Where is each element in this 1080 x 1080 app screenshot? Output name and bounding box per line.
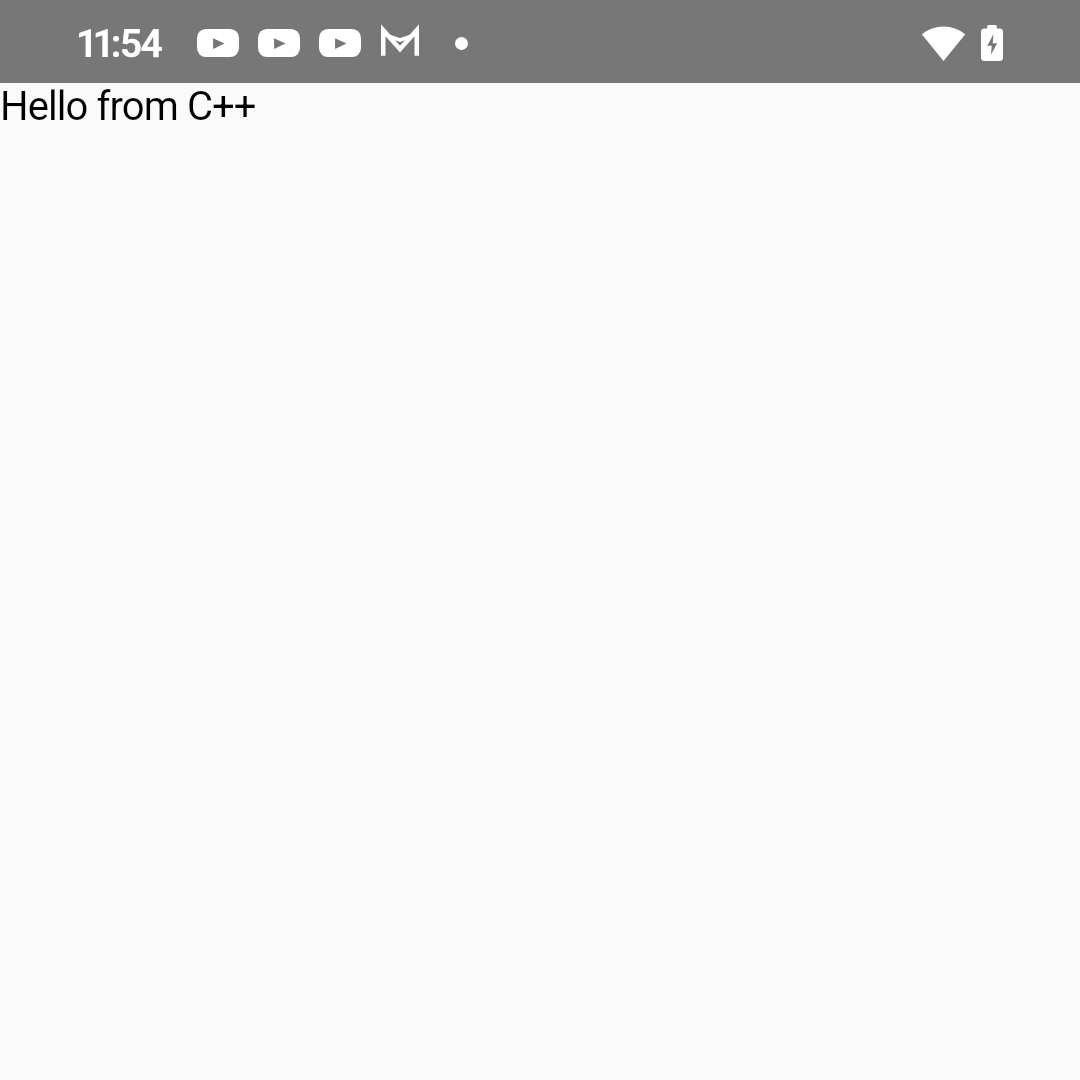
other: Wi-Fi signal full bbox=[923, 25, 964, 61]
staticText: 11:54 bbox=[77, 21, 162, 67]
other: YouTube notification bbox=[197, 29, 239, 57]
other: YouTube notification bbox=[319, 29, 361, 57]
other: Gmail notification bbox=[381, 28, 419, 58]
staticText: Hello from C++ bbox=[0, 83, 256, 130]
other: YouTube notification bbox=[258, 29, 300, 57]
other: Battery charging bbox=[981, 25, 1003, 61]
other: More notifications bbox=[455, 37, 468, 50]
